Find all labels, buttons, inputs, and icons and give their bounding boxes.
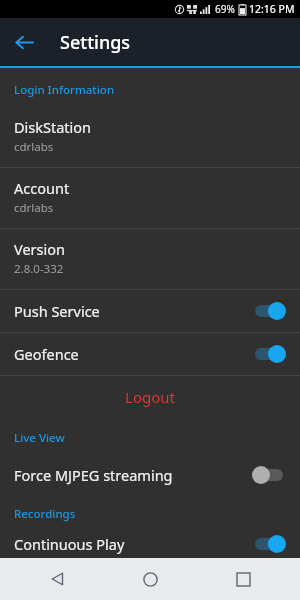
button[interactable]: Logout bbox=[0, 376, 300, 418]
staticText: Geofence bbox=[14, 344, 79, 364]
staticText: 69% bbox=[215, 2, 235, 16]
staticText: 12:16 PM bbox=[249, 2, 295, 16]
button[interactable]: Recent apps bbox=[208, 558, 278, 600]
button[interactable]: Geofence bbox=[0, 333, 300, 375]
staticText: Account bbox=[14, 178, 70, 198]
button[interactable]: Force MJPEG streaming bbox=[0, 454, 300, 496]
staticText: Settings bbox=[60, 30, 131, 55]
staticText: Force MJPEG streaming bbox=[14, 465, 173, 485]
button[interactable]: Account bbox=[0, 168, 300, 228]
button[interactable]: Back bbox=[23, 558, 93, 600]
button[interactable]: Continuous Play bbox=[0, 530, 300, 558]
staticText: Recordings bbox=[14, 506, 76, 522]
button[interactable]: Version bbox=[0, 229, 300, 289]
staticText: Version bbox=[14, 239, 65, 259]
staticText: Live View bbox=[14, 430, 65, 446]
button[interactable]: Back bbox=[0, 18, 48, 66]
staticText: Logout bbox=[125, 387, 175, 407]
staticText: DiskStation bbox=[14, 117, 92, 137]
button[interactable]: Home bbox=[115, 558, 185, 600]
staticText: Login Information bbox=[14, 82, 115, 98]
staticText: cdrlabs bbox=[14, 139, 54, 155]
button[interactable]: Push Service bbox=[0, 290, 300, 332]
button[interactable]: DiskStation bbox=[0, 107, 300, 167]
staticText: 2.8.0-332 bbox=[14, 261, 64, 277]
staticText: cdrlabs bbox=[14, 200, 54, 216]
staticText: Push Service bbox=[14, 301, 100, 321]
staticText: Continuous Play bbox=[14, 534, 125, 554]
